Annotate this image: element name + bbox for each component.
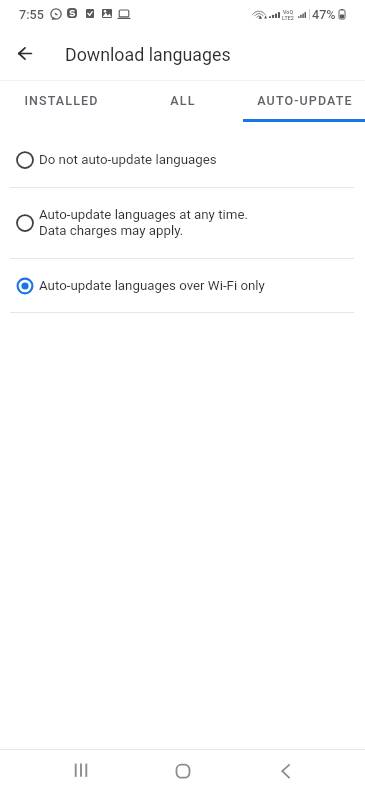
button[interactable]: Recent apps xyxy=(61,750,101,790)
staticText: LTE2 xyxy=(282,15,294,21)
staticText: Download languages xyxy=(65,44,231,65)
staticText: Do not auto-update languages xyxy=(39,152,217,168)
button[interactable]: ALL xyxy=(121,81,243,122)
staticText: INSTALLED xyxy=(24,93,99,108)
button[interactable]: Do not auto-update languages xyxy=(0,132,365,187)
button[interactable]: Auto-update languages at any time. xyxy=(0,188,365,258)
staticText: Auto-update languages at any time. xyxy=(39,207,249,223)
staticText: Auto-update languages over Wi-Fi only xyxy=(39,278,265,294)
staticText: 7:55 xyxy=(19,7,44,22)
button[interactable]: Navigate up xyxy=(7,35,43,71)
button[interactable]: Back xyxy=(266,751,306,791)
button[interactable]: Auto-update languages over Wi-Fi only xyxy=(0,259,365,312)
staticText: VoQ xyxy=(283,9,294,15)
staticText: Data charges may apply. xyxy=(39,223,184,239)
button[interactable]: Home xyxy=(163,751,203,791)
button[interactable]: INSTALLED xyxy=(0,81,121,122)
staticText: ALL xyxy=(170,93,196,108)
button[interactable]: AUTO-UPDATE xyxy=(243,81,365,122)
staticText: AUTO-UPDATE xyxy=(257,93,353,108)
staticText: 47% xyxy=(312,7,336,22)
